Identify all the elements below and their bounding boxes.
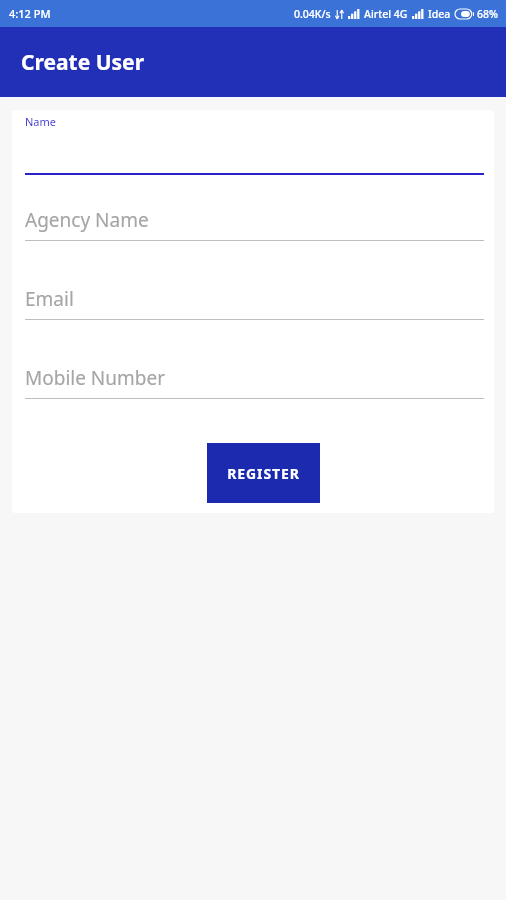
- staticText: Mobile Number: [25, 365, 166, 391]
- staticText: Idea: [428, 7, 451, 21]
- staticText: Name: [25, 114, 57, 129]
- button[interactable]: Agency Name: [12, 188, 494, 241]
- button[interactable]: REGISTER: [207, 443, 320, 503]
- staticText: Create User: [21, 48, 145, 77]
- staticText: 68%: [477, 7, 498, 21]
- staticText: 4:12 PM: [9, 6, 51, 21]
- staticText: 0.04K/s: [294, 7, 331, 21]
- staticText: Airtel 4G: [364, 7, 408, 21]
- staticText: REGISTER: [227, 464, 300, 483]
- button[interactable]: Email: [12, 267, 494, 320]
- button[interactable]: Name: [12, 110, 494, 175]
- button[interactable]: Mobile Number: [12, 346, 494, 399]
- staticText: Agency Name: [25, 207, 149, 233]
- staticText: Email: [25, 286, 74, 312]
